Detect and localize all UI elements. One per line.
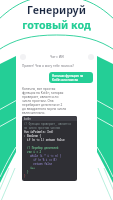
button[interactable]: Напиши функцию на Kotlin для поиска прос… (49, 72, 93, 83)
staticText: i++ (24, 166, 35, 170)
staticText: ли число простым числом (24, 126, 60, 130)
staticText: if (n <= 1) return false (24, 138, 65, 142)
staticText: Генерируй (27, 3, 86, 18)
staticText: Напиши функцию на Kotlin для поиска прос… (52, 74, 90, 81)
staticText: while (i * i <= n) { (24, 154, 62, 158)
staticText: fun isPrime(n: Int) (24, 130, 54, 134)
staticText: готовый код (22, 18, 91, 33)
staticText: if (n % i == 0) (24, 158, 57, 162)
staticText: // Перебор делителей (24, 146, 59, 150)
staticText: } (24, 170, 29, 174)
staticText: Конечно, вот простая функция на Kotlin, … (22, 87, 67, 115)
staticText: // Функция проверяет, является (24, 122, 71, 126)
staticText: Чат с ИИ (50, 55, 64, 59)
staticText: return false (24, 162, 53, 166)
staticText: : Boolean { (24, 134, 42, 138)
button[interactable]: Menu (20, 54, 26, 60)
staticText: } (24, 174, 26, 178)
staticText: var i = 2 (24, 150, 42, 154)
button[interactable]: New chat (88, 54, 94, 60)
staticText: Привет! Чем я могу тебе помочь? (22, 64, 74, 68)
staticText: kotlin (24, 117, 31, 121)
